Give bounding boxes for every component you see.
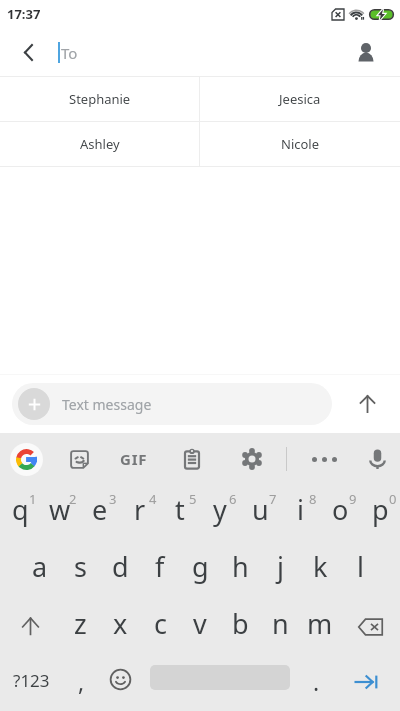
- staticText: 17:37: [7, 5, 41, 23]
- staticText: 9: [349, 490, 357, 508]
- staticText: h: [232, 548, 249, 585]
- staticText: o: [332, 491, 349, 528]
- staticText: m: [307, 605, 333, 642]
- other: Attach: [18, 388, 50, 420]
- button[interactable]: t: [160, 485, 200, 542]
- staticText: 3: [109, 490, 117, 508]
- button[interactable]: Attach: [12, 383, 332, 425]
- button[interactable]: m: [300, 599, 340, 656]
- staticText: 6: [229, 490, 237, 508]
- staticText: 0: [389, 490, 397, 508]
- button[interactable]: Nicole: [200, 122, 400, 166]
- staticText: 4: [149, 490, 157, 508]
- button[interactable]: r: [120, 485, 160, 542]
- button[interactable]: s: [60, 542, 100, 599]
- button[interactable]: ,: [61, 656, 101, 711]
- button[interactable]: Google search: [4, 437, 48, 481]
- staticText: w: [49, 491, 71, 528]
- button[interactable]: More options: [302, 437, 346, 481]
- button[interactable]: h: [220, 542, 260, 599]
- staticText: q: [12, 491, 29, 528]
- button[interactable]: Emoji: [100, 656, 140, 711]
- staticText: 8: [309, 490, 317, 508]
- staticText: ?123: [13, 669, 50, 692]
- staticText: p: [372, 491, 389, 528]
- staticText: k: [313, 548, 328, 585]
- button[interactable]: f: [140, 542, 180, 599]
- button[interactable]: a: [20, 542, 60, 599]
- staticText: 2: [69, 490, 77, 508]
- button[interactable]: i: [280, 485, 320, 542]
- button[interactable]: u: [240, 485, 280, 542]
- button[interactable]: l: [340, 542, 380, 599]
- staticText: g: [192, 548, 209, 585]
- button[interactable]: Settings: [230, 437, 274, 481]
- button[interactable]: Contacts: [342, 28, 390, 76]
- button[interactable]: b: [220, 599, 260, 656]
- staticText: s: [74, 548, 87, 585]
- button[interactable]: Send: [334, 375, 400, 433]
- staticText: u: [252, 491, 269, 528]
- button[interactable]: y: [200, 485, 240, 542]
- staticText: d: [112, 548, 129, 585]
- button[interactable]: n: [260, 599, 300, 656]
- button[interactable]: .: [296, 656, 336, 711]
- staticText: GIF: [120, 449, 148, 469]
- button[interactable]: Stephanie: [0, 77, 199, 121]
- button[interactable]: GIF: [112, 437, 156, 481]
- staticText: y: [213, 491, 227, 528]
- staticText: n: [272, 605, 289, 642]
- button[interactable]: ?123: [6, 656, 56, 711]
- button[interactable]: Back: [0, 28, 57, 76]
- button[interactable]: Ashley: [0, 122, 199, 166]
- button[interactable]: Stickers: [57, 437, 101, 481]
- staticText: j: [277, 548, 284, 585]
- button[interactable]: Jeesica: [200, 77, 400, 121]
- button[interactable]: q: [0, 485, 40, 542]
- staticText: c: [154, 605, 167, 642]
- button[interactable]: k: [300, 542, 340, 599]
- button[interactable]: g: [180, 542, 220, 599]
- button[interactable]: c: [140, 599, 180, 656]
- staticText: t: [175, 491, 185, 528]
- button[interactable]: Clipboard: [170, 437, 214, 481]
- staticText: Ashley: [80, 135, 120, 153]
- button[interactable]: z: [60, 599, 100, 656]
- button[interactable]: v: [180, 599, 220, 656]
- staticText: r: [134, 491, 146, 528]
- button[interactable]: Backspace: [340, 599, 400, 656]
- staticText: v: [193, 605, 207, 642]
- button[interactable]: o: [320, 485, 360, 542]
- staticText: 5: [189, 490, 197, 508]
- staticText: l: [357, 548, 364, 585]
- button[interactable]: j: [260, 542, 300, 599]
- staticText: x: [113, 605, 128, 642]
- button[interactable]: Next field: [343, 656, 389, 711]
- staticText: Nicole: [281, 135, 320, 153]
- staticText: Text message: [62, 395, 152, 414]
- button[interactable]: d: [100, 542, 140, 599]
- button[interactable]: p: [360, 485, 400, 542]
- staticText: Stephanie: [69, 90, 131, 108]
- staticText: .: [313, 666, 320, 697]
- staticText: Jeesica: [279, 90, 321, 108]
- staticText: b: [232, 605, 249, 642]
- staticText: 1: [29, 490, 37, 508]
- staticText: i: [297, 491, 304, 528]
- staticText: To: [61, 43, 78, 63]
- button[interactable]: w: [40, 485, 80, 542]
- button[interactable]: Shift: [0, 599, 60, 656]
- button[interactable]: e: [80, 485, 120, 542]
- staticText: f: [155, 548, 165, 585]
- button[interactable]: x: [100, 599, 140, 656]
- staticText: 7: [269, 490, 277, 508]
- staticText: a: [32, 548, 48, 585]
- staticText: ,: [78, 666, 85, 697]
- button[interactable]: Voice input: [355, 437, 399, 481]
- staticText: e: [92, 491, 108, 528]
- staticText: z: [74, 605, 87, 642]
